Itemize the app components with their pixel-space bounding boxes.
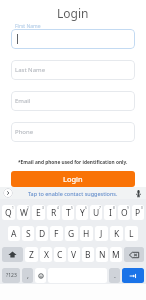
- staticText: ?123: [6, 272, 17, 279]
- staticText: 9: [127, 206, 129, 210]
- staticText: W: [20, 207, 28, 219]
- button[interactable]: W: [17, 205, 30, 220]
- staticText: Q: [5, 207, 12, 219]
- button[interactable]: N: [96, 247, 108, 262]
- staticText: U: [93, 207, 100, 219]
- button[interactable]: Shift: [2, 247, 23, 262]
- staticText: E: [36, 207, 41, 219]
- button[interactable]: Z: [25, 247, 38, 262]
- button[interactable]: B: [82, 247, 94, 262]
- button[interactable]: G: [65, 226, 78, 241]
- staticText: K: [114, 228, 120, 240]
- staticText: D: [39, 228, 46, 240]
- staticText: X: [44, 249, 49, 261]
- button[interactable]: I: [104, 205, 116, 220]
- staticText: Y: [80, 207, 85, 219]
- button[interactable]: F: [50, 226, 63, 241]
- button[interactable]: .: [109, 268, 120, 283]
- button[interactable]: E: [32, 205, 45, 220]
- staticText: 5: [71, 206, 73, 210]
- staticText: J: [100, 228, 103, 240]
- staticText: ,: [27, 271, 29, 281]
- staticText: A: [11, 228, 17, 240]
- button[interactable]: Login: [11, 171, 135, 187]
- staticText: 6: [85, 206, 87, 210]
- button[interactable]: V: [68, 247, 80, 262]
- staticText: Tap to enable contact suggestions.: [28, 190, 118, 197]
- button[interactable]: Emoji: [35, 268, 46, 283]
- staticText: B: [85, 249, 91, 261]
- staticText: I: [109, 207, 112, 219]
- button[interactable]: Expand suggestions: [3, 188, 13, 198]
- button[interactable]: U: [90, 205, 102, 220]
- button[interactable]: Email: [11, 91, 135, 111]
- button[interactable]: K: [110, 226, 123, 241]
- staticText: N: [99, 249, 106, 261]
- button[interactable]: ?123: [2, 268, 20, 283]
- staticText: P: [135, 207, 141, 219]
- staticText: 7: [99, 206, 101, 210]
- staticText: Email: [15, 97, 31, 105]
- staticText: G: [68, 228, 75, 240]
- staticText: 0: [141, 206, 143, 210]
- staticText: V: [71, 249, 77, 261]
- button[interactable]: H: [80, 226, 93, 241]
- staticText: 1: [12, 206, 14, 210]
- button[interactable]: O: [118, 205, 130, 220]
- button[interactable]: R: [47, 205, 60, 220]
- staticText: T: [66, 207, 71, 219]
- button[interactable]: A: [8, 226, 20, 241]
- staticText: Login: [63, 174, 83, 184]
- staticText: 4: [57, 206, 59, 210]
- button[interactable]: J: [95, 226, 108, 241]
- staticText: F: [54, 228, 59, 240]
- staticText: Phone: [15, 128, 34, 136]
- button[interactable]: M: [110, 247, 122, 262]
- button[interactable]: T: [62, 205, 74, 220]
- button[interactable]: Voice input: [134, 189, 143, 198]
- button[interactable]: X: [40, 247, 52, 262]
- staticText: First Name: [15, 23, 41, 30]
- button[interactable]: Q: [2, 205, 15, 220]
- staticText: M: [112, 249, 120, 261]
- staticText: .: [114, 271, 116, 281]
- staticText: S: [26, 228, 31, 240]
- staticText: Z: [29, 249, 34, 261]
- staticText: 2: [27, 206, 29, 210]
- staticText: L: [129, 228, 134, 240]
- button[interactable]: [11, 29, 135, 49]
- staticText: *Email and phone used for identification…: [18, 159, 128, 166]
- staticText: R: [51, 207, 57, 219]
- staticText: Login: [57, 5, 89, 21]
- staticText: O: [121, 207, 128, 219]
- button[interactable]: Backspace: [124, 247, 144, 262]
- staticText: Last Name: [15, 66, 46, 74]
- staticText: H: [83, 228, 90, 240]
- staticText: C: [57, 249, 63, 261]
- button[interactable]: Enter: [122, 268, 144, 283]
- staticText: 3: [42, 206, 44, 210]
- button[interactable]: Last Name: [11, 60, 135, 80]
- button[interactable]: Y: [76, 205, 88, 220]
- button[interactable]: S: [22, 226, 34, 241]
- button[interactable]: Phone: [11, 122, 135, 142]
- button[interactable]: ,: [22, 268, 33, 283]
- button[interactable]: C: [54, 247, 66, 262]
- staticText: 8: [113, 206, 115, 210]
- button[interactable]: P: [132, 205, 144, 220]
- button[interactable]: L: [125, 226, 138, 241]
- button[interactable]: D: [36, 226, 48, 241]
